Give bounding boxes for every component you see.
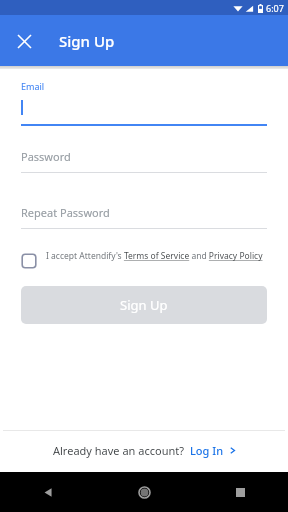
staticText: Email	[21, 80, 45, 92]
button[interactable]: Email	[21, 80, 267, 126]
button[interactable]: Password	[21, 149, 267, 173]
staticText: Already have an account?	[53, 443, 184, 458]
staticText: Repeat Password	[21, 205, 110, 220]
button[interactable]: Close	[9, 26, 39, 56]
staticText: 6:07	[266, 2, 284, 14]
button[interactable]: Already have an account?	[3, 430, 285, 471]
button[interactable]: Accept terms checkbox	[21, 250, 267, 269]
staticText: Sign Up	[120, 296, 168, 314]
button[interactable]: Repeat Password	[21, 205, 267, 229]
other: Accept terms checkbox	[21, 253, 37, 269]
button[interactable]: Home	[96, 472, 192, 512]
button[interactable]: Recents	[192, 472, 288, 512]
staticText: Sign Up	[59, 31, 115, 51]
staticText: I accept Attendify's Terms of Service an…	[46, 250, 263, 262]
staticText: Password	[21, 149, 71, 164]
staticText: Log In	[190, 443, 224, 458]
button[interactable]: Sign Up	[21, 286, 267, 324]
button[interactable]: Back	[0, 472, 96, 512]
